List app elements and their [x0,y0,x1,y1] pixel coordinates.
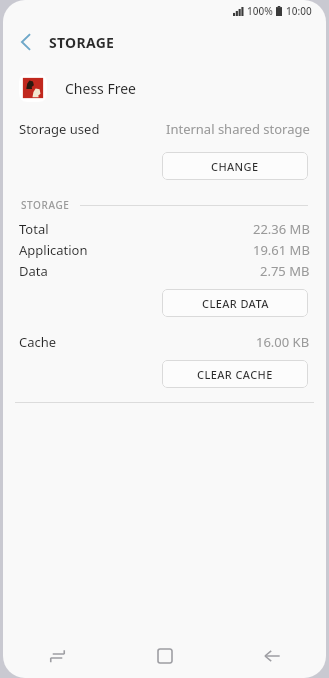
staticText: Cache [19,333,57,351]
staticText: Storage used [19,120,100,138]
staticText: 22.36 MB [253,220,310,238]
button[interactable]: CLEAR DATA [162,289,308,317]
staticText: 100% [247,4,273,18]
button[interactable]: Recents [31,634,83,678]
staticText: Application [19,241,88,259]
staticText: 2.75 MB [260,262,310,280]
staticText: Internal shared storage [166,120,310,138]
staticText: CLEAR CACHE [197,367,273,382]
button[interactable]: CLEAR CACHE [162,360,308,388]
button[interactable]: Back [9,25,43,59]
button[interactable]: Back [246,634,298,678]
staticText: 16.00 KB [256,333,310,351]
button[interactable]: CHANGE [162,152,308,180]
staticText: Total [19,220,49,238]
staticText: 19.61 MB [253,241,310,259]
staticText: STORAGE [49,33,115,52]
button[interactable]: Home [139,634,191,678]
staticText: 10:00 [286,4,312,18]
staticText: CLEAR DATA [202,296,269,311]
staticText: Chess Free [65,79,137,98]
staticText: CHANGE [211,159,259,174]
staticText: STORAGE [21,198,70,212]
staticText: Data [19,262,48,280]
